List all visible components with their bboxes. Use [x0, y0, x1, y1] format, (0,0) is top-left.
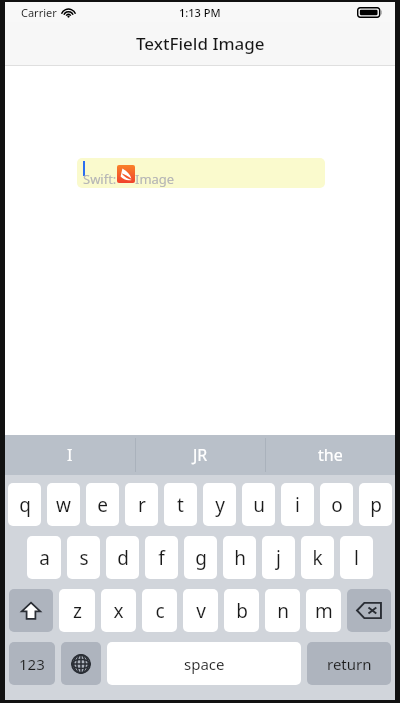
- staticText: n: [277, 598, 289, 624]
- staticText: return: [327, 654, 372, 674]
- staticText: Image: [135, 170, 175, 188]
- button[interactable]: return: [307, 642, 391, 685]
- button[interactable]: u: [242, 483, 275, 526]
- staticText: I: [67, 444, 73, 466]
- button[interactable]: r: [125, 483, 158, 526]
- button[interactable]: p: [359, 483, 392, 526]
- button[interactable]: f: [145, 536, 178, 579]
- button[interactable]: a: [27, 536, 61, 579]
- staticText: v: [196, 598, 206, 624]
- staticText: y: [215, 492, 225, 518]
- staticText: the: [318, 444, 343, 466]
- button[interactable]: m: [306, 589, 341, 632]
- button[interactable]: k: [301, 536, 334, 579]
- staticText: h: [234, 545, 246, 571]
- button[interactable]: j: [262, 536, 295, 579]
- staticText: TextField Image: [136, 32, 265, 55]
- button[interactable]: Swift:: [77, 158, 325, 188]
- button[interactable]: w: [47, 483, 80, 526]
- staticText: t: [177, 492, 184, 518]
- button[interactable]: l: [340, 536, 373, 579]
- button[interactable]: z: [59, 589, 95, 632]
- button[interactable]: n: [265, 589, 300, 632]
- staticText: w: [56, 492, 71, 518]
- staticText: space: [184, 654, 225, 674]
- button[interactable]: v: [183, 589, 218, 632]
- staticText: 123: [19, 654, 45, 674]
- staticText: e: [97, 492, 108, 518]
- staticText: 1:13 PM: [179, 5, 221, 20]
- staticText: f: [158, 545, 165, 571]
- staticText: c: [155, 598, 165, 624]
- staticText: JR: [193, 444, 208, 466]
- staticText: j: [276, 545, 281, 571]
- staticText: k: [312, 545, 323, 571]
- staticText: x: [113, 598, 124, 624]
- button[interactable]: Backspace: [347, 589, 391, 632]
- button[interactable]: b: [224, 589, 259, 632]
- button[interactable]: q: [8, 483, 41, 526]
- button[interactable]: Change keyboard language: [61, 642, 101, 685]
- button[interactable]: I: [5, 435, 135, 475]
- staticText: i: [295, 492, 300, 518]
- staticText: z: [73, 598, 82, 624]
- staticText: Carrier: [21, 5, 57, 20]
- button[interactable]: JR: [136, 435, 265, 475]
- button[interactable]: i: [281, 483, 314, 526]
- staticText: g: [195, 545, 207, 571]
- staticText: u: [253, 492, 265, 518]
- staticText: l: [354, 545, 359, 571]
- staticText: o: [331, 492, 343, 518]
- staticText: b: [236, 598, 248, 624]
- button[interactable]: Shift: [9, 589, 53, 632]
- staticText: m: [315, 598, 333, 624]
- button[interactable]: h: [223, 536, 256, 579]
- button[interactable]: y: [203, 483, 236, 526]
- staticText: s: [79, 545, 89, 571]
- staticText: p: [370, 492, 382, 518]
- button[interactable]: e: [86, 483, 119, 526]
- staticText: a: [39, 545, 50, 571]
- button[interactable]: c: [142, 589, 177, 632]
- button[interactable]: space: [107, 642, 301, 685]
- button[interactable]: 123: [9, 642, 55, 685]
- button[interactable]: d: [106, 536, 139, 579]
- staticText: d: [117, 545, 129, 571]
- button[interactable]: the: [266, 435, 395, 475]
- button[interactable]: x: [101, 589, 136, 632]
- staticText: q: [19, 492, 31, 518]
- button[interactable]: t: [164, 483, 197, 526]
- button[interactable]: g: [184, 536, 217, 579]
- button[interactable]: s: [67, 536, 100, 579]
- staticText: r: [138, 492, 146, 518]
- button[interactable]: o: [320, 483, 353, 526]
- staticText: Swift:: [83, 170, 117, 188]
